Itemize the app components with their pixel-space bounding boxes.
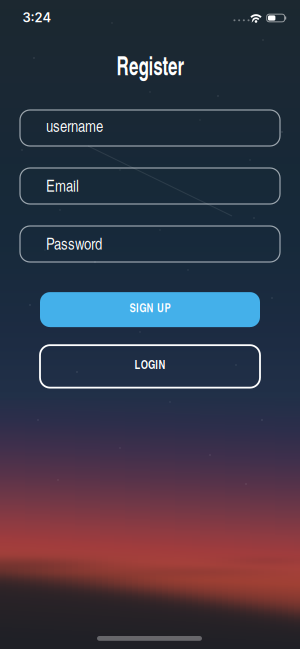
staticText: Register [107, 46, 194, 83]
button[interactable]: username [20, 110, 280, 146]
staticText: Password [46, 232, 102, 254]
button[interactable]: SIGN UP [40, 292, 260, 327]
staticText: LOGIN [134, 356, 166, 373]
button[interactable]: Email [20, 168, 280, 204]
staticText: username [46, 115, 103, 136]
staticText: Email [46, 174, 79, 196]
staticText: SIGN UP [130, 299, 170, 316]
button[interactable]: Password [20, 226, 280, 262]
button[interactable]: LOGIN [40, 345, 260, 388]
staticText: 3:24 [22, 10, 51, 25]
